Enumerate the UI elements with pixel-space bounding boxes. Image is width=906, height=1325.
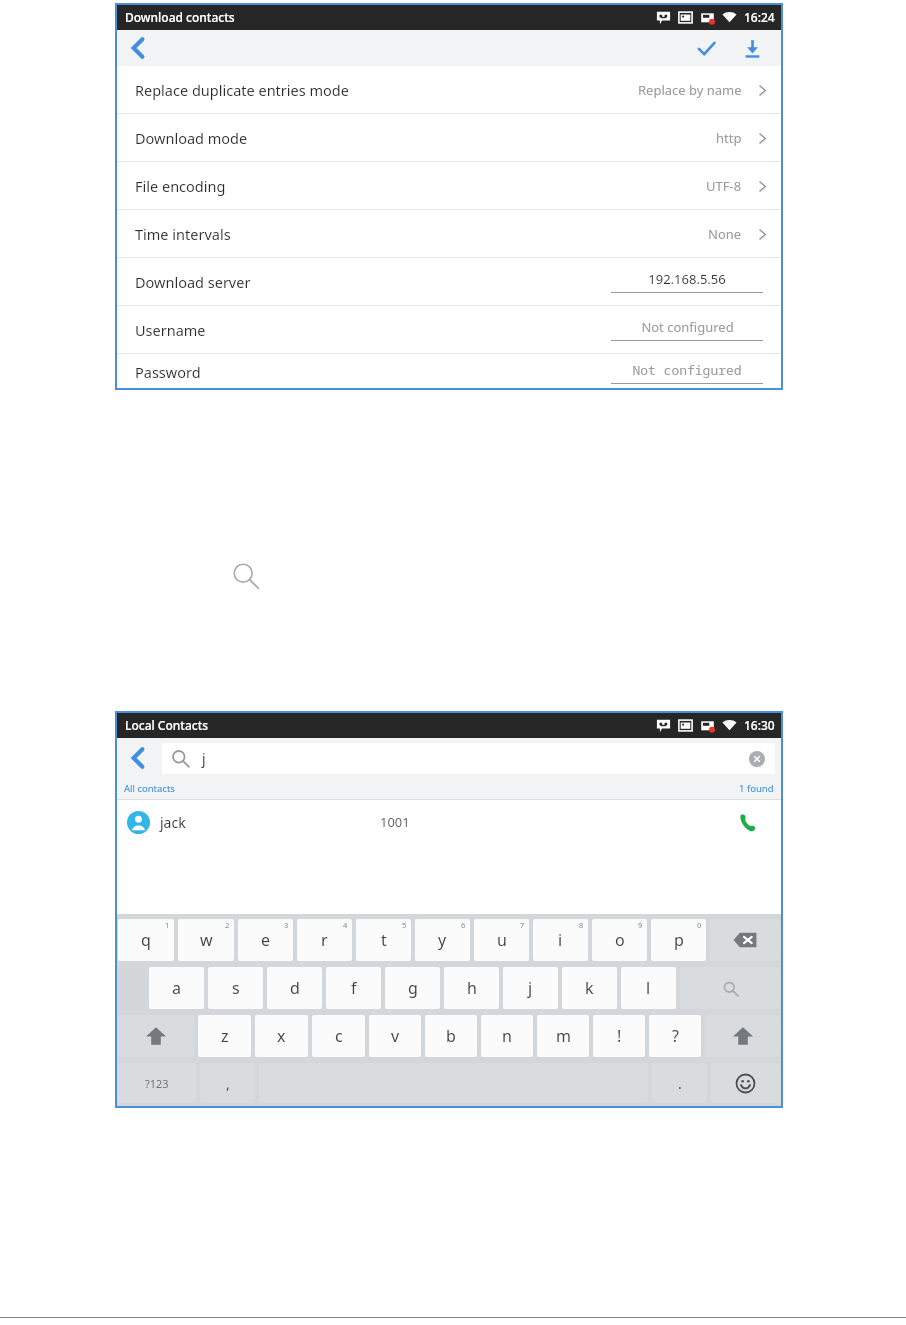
button[interactable]: Download — [735, 31, 769, 65]
other: Search — [723, 981, 738, 996]
staticText: z — [221, 1025, 229, 1047]
button[interactable]: b — [425, 1015, 477, 1057]
button[interactable]: Emoji — [711, 1063, 780, 1103]
button[interactable]: Shift — [118, 1015, 194, 1057]
staticText: h — [467, 977, 477, 999]
staticText: e — [261, 929, 271, 951]
staticText: 8 — [579, 920, 584, 930]
staticText: All contacts — [124, 782, 175, 795]
other: Backspace — [732, 927, 758, 953]
staticText: ! — [617, 1025, 622, 1047]
button[interactable]: Search — [680, 967, 780, 1009]
button[interactable]: m — [537, 1015, 589, 1057]
button[interactable]: ? — [649, 1015, 701, 1057]
staticText: ? — [672, 1025, 679, 1047]
button[interactable]: u — [474, 919, 529, 961]
staticText: 16:24 — [744, 9, 775, 25]
button[interactable]: File encoding — [115, 162, 783, 209]
staticText: r — [321, 929, 328, 951]
button[interactable]: l — [621, 967, 676, 1009]
staticText: Local Contacts — [125, 717, 209, 733]
button[interactable]: f — [326, 967, 381, 1009]
other: Emoji — [736, 1074, 755, 1093]
button[interactable]: e — [238, 919, 293, 961]
button[interactable]: i — [533, 919, 588, 961]
button[interactable]: . — [652, 1063, 707, 1103]
button[interactable]: q — [118, 919, 174, 961]
staticText: g — [408, 977, 418, 999]
staticText: Download server — [135, 272, 251, 292]
button[interactable]: Download server — [115, 258, 783, 305]
staticText: q — [141, 929, 151, 951]
button[interactable]: Shift — [705, 1015, 780, 1057]
button[interactable]: y — [415, 919, 470, 961]
button[interactable]: v — [369, 1015, 421, 1057]
button[interactable]: j — [503, 967, 558, 1009]
button[interactable]: Back — [121, 741, 155, 775]
button[interactable]: o — [592, 919, 647, 961]
staticText: Download mode — [135, 128, 248, 148]
button[interactable]: n — [481, 1015, 533, 1057]
staticText: , — [226, 1074, 230, 1093]
button[interactable]: k — [562, 967, 617, 1009]
button[interactable]: j — [162, 743, 775, 774]
button[interactable]: Password — [115, 354, 783, 390]
button[interactable]: Backspace — [710, 919, 780, 961]
button[interactable]: Back — [121, 31, 155, 65]
staticText: 5 — [402, 920, 407, 930]
button[interactable]: w — [178, 919, 234, 961]
button[interactable]: d — [267, 967, 322, 1009]
staticText: i — [558, 929, 563, 951]
staticText: jack — [160, 813, 186, 832]
button[interactable]: , — [200, 1063, 255, 1103]
button[interactable]: c — [312, 1015, 365, 1057]
staticText: 16:30 — [744, 717, 775, 733]
button[interactable]: a — [149, 967, 204, 1009]
staticText: ?123 — [145, 1076, 169, 1091]
button[interactable]: Clear search — [749, 751, 765, 767]
button[interactable]: h — [444, 967, 499, 1009]
button[interactable]: ! — [593, 1015, 645, 1057]
button[interactable]: Time intervals — [115, 210, 783, 257]
staticText: p — [674, 929, 684, 951]
button[interactable]: Download mode — [115, 114, 783, 161]
staticText: 0 — [697, 920, 702, 930]
staticText: None — [708, 225, 742, 243]
staticText: 3 — [284, 920, 289, 930]
button[interactable]: Confirm — [689, 31, 723, 65]
staticText: j — [528, 977, 533, 999]
staticText: c — [335, 1025, 343, 1047]
staticText: Replace by name — [638, 81, 742, 99]
staticText: o — [615, 929, 625, 951]
staticText: k — [585, 977, 594, 999]
button[interactable]: Username — [115, 306, 783, 353]
button[interactable]: x — [255, 1015, 308, 1057]
staticText: d — [290, 977, 300, 999]
other: Shift — [731, 1024, 755, 1048]
staticText: Not configured — [632, 361, 742, 379]
staticText: y — [438, 929, 447, 951]
staticText: 1 found — [739, 782, 774, 795]
staticText: UTF-8 — [706, 177, 742, 195]
staticText: Time intervals — [135, 224, 231, 244]
other: Shift — [144, 1024, 168, 1048]
button[interactable]: ?123 — [118, 1063, 196, 1103]
button[interactable]: g — [385, 967, 440, 1009]
staticText: http — [716, 129, 742, 147]
button[interactable]: t — [356, 919, 411, 961]
staticText: m — [556, 1025, 571, 1047]
staticText: Replace duplicate entries mode — [135, 80, 349, 100]
staticText: w — [200, 929, 213, 951]
button[interactable]: p — [651, 919, 706, 961]
staticText: 1 — [165, 920, 170, 930]
staticText: 1001 — [380, 813, 410, 831]
button[interactable]: z — [198, 1015, 251, 1057]
staticText: 6 — [461, 920, 466, 930]
button[interactable]: s — [208, 967, 263, 1009]
staticText: File encoding — [135, 176, 226, 196]
button[interactable]: jack — [115, 800, 783, 844]
button[interactable]: r — [297, 919, 352, 961]
button[interactable]: Call — [733, 808, 761, 836]
button[interactable]: Replace duplicate entries mode — [115, 66, 783, 113]
